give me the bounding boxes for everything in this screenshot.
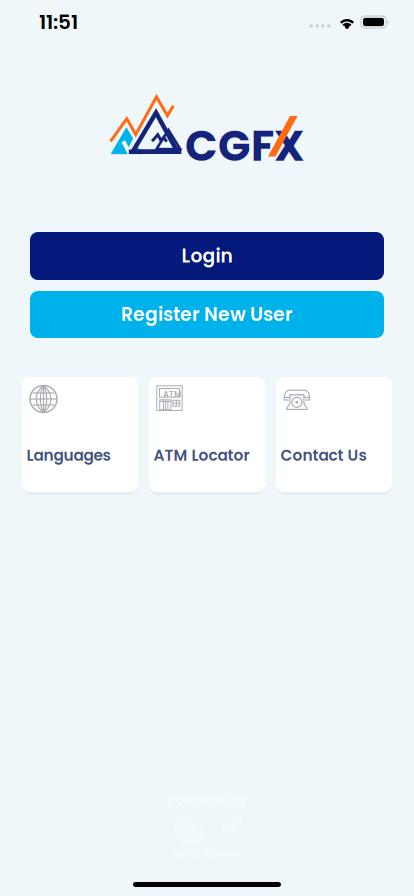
staticText: 11:51 <box>39 8 78 36</box>
staticText: ATM <box>163 389 181 400</box>
button[interactable]: Register New User <box>30 291 384 338</box>
staticText: Login <box>181 243 232 269</box>
button[interactable]: Contact Us <box>276 377 392 495</box>
staticText: CGFX <box>185 116 305 176</box>
button[interactable]: Login <box>30 232 384 280</box>
staticText: Contact Us <box>280 444 366 466</box>
button[interactable]: ATM <box>149 377 265 495</box>
staticText: Languages <box>26 444 110 466</box>
staticText: Register New User <box>121 301 293 327</box>
staticText: ATM Locator <box>153 444 249 466</box>
button[interactable]: Languages <box>22 377 138 495</box>
